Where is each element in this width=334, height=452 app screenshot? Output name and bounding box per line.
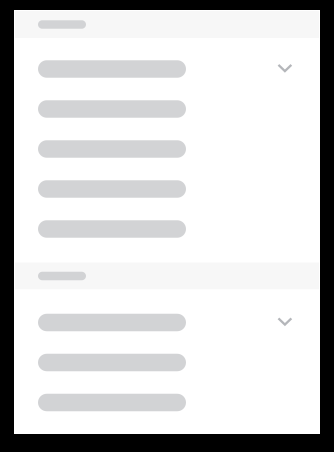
button[interactable]: Loading section header [14, 262, 320, 289]
button[interactable]: Loading section header [14, 11, 320, 38]
button[interactable]: Loading row [14, 209, 320, 249]
button[interactable]: Loading row [14, 342, 320, 382]
button[interactable]: Loading row [14, 89, 320, 129]
button[interactable]: Loading row [14, 169, 320, 209]
button[interactable]: Loading, expandable row [14, 302, 320, 342]
button[interactable]: Loading row [14, 129, 320, 169]
button[interactable]: Loading row [14, 382, 320, 422]
button[interactable]: Loading, expandable row [14, 49, 320, 89]
